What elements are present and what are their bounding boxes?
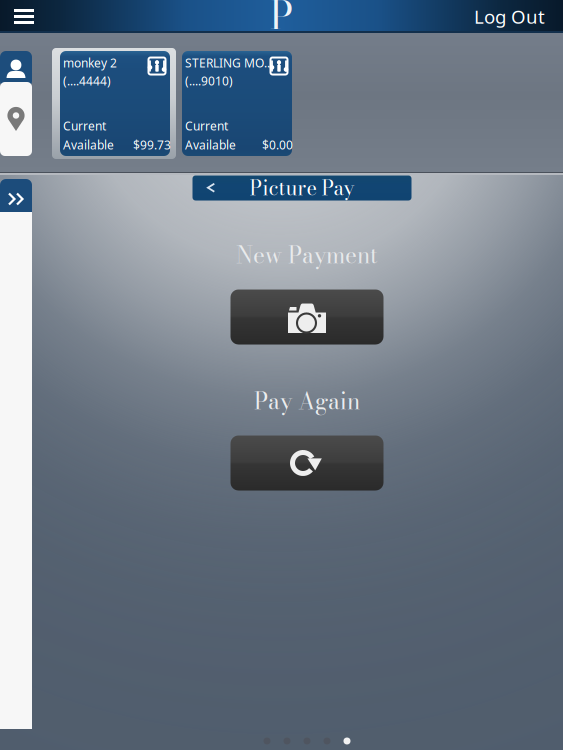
staticText: Available bbox=[185, 137, 236, 153]
staticText: Picture Pay bbox=[249, 173, 354, 203]
button[interactable]: Locations bbox=[0, 82, 32, 156]
button[interactable]: Log Out bbox=[474, 0, 563, 33]
staticText: monkey 2 bbox=[63, 55, 117, 71]
button[interactable]: New Payment, take a photo bbox=[230, 289, 383, 344]
button[interactable]: Accounts bbox=[0, 51, 32, 87]
staticText: Log Out bbox=[474, 4, 545, 29]
staticText: Pay Again bbox=[254, 384, 360, 418]
staticText: (....4444) bbox=[63, 73, 111, 89]
staticText: P bbox=[270, 0, 293, 44]
button[interactable]: Expand menu bbox=[0, 179, 32, 219]
staticText: $0.00 bbox=[262, 137, 293, 153]
staticText: Available bbox=[63, 137, 114, 153]
button[interactable]: Picture Pay bbox=[192, 175, 411, 200]
button[interactable]: Menu bbox=[0, 0, 48, 33]
button[interactable]: Pay Again bbox=[230, 435, 383, 490]
staticText: New Payment bbox=[236, 238, 378, 272]
staticText: STERLING MO... bbox=[185, 55, 273, 71]
staticText: Current bbox=[185, 118, 228, 134]
staticText: $99.73 bbox=[133, 137, 171, 153]
staticText: Current bbox=[63, 118, 106, 134]
staticText: (....9010) bbox=[185, 73, 233, 89]
